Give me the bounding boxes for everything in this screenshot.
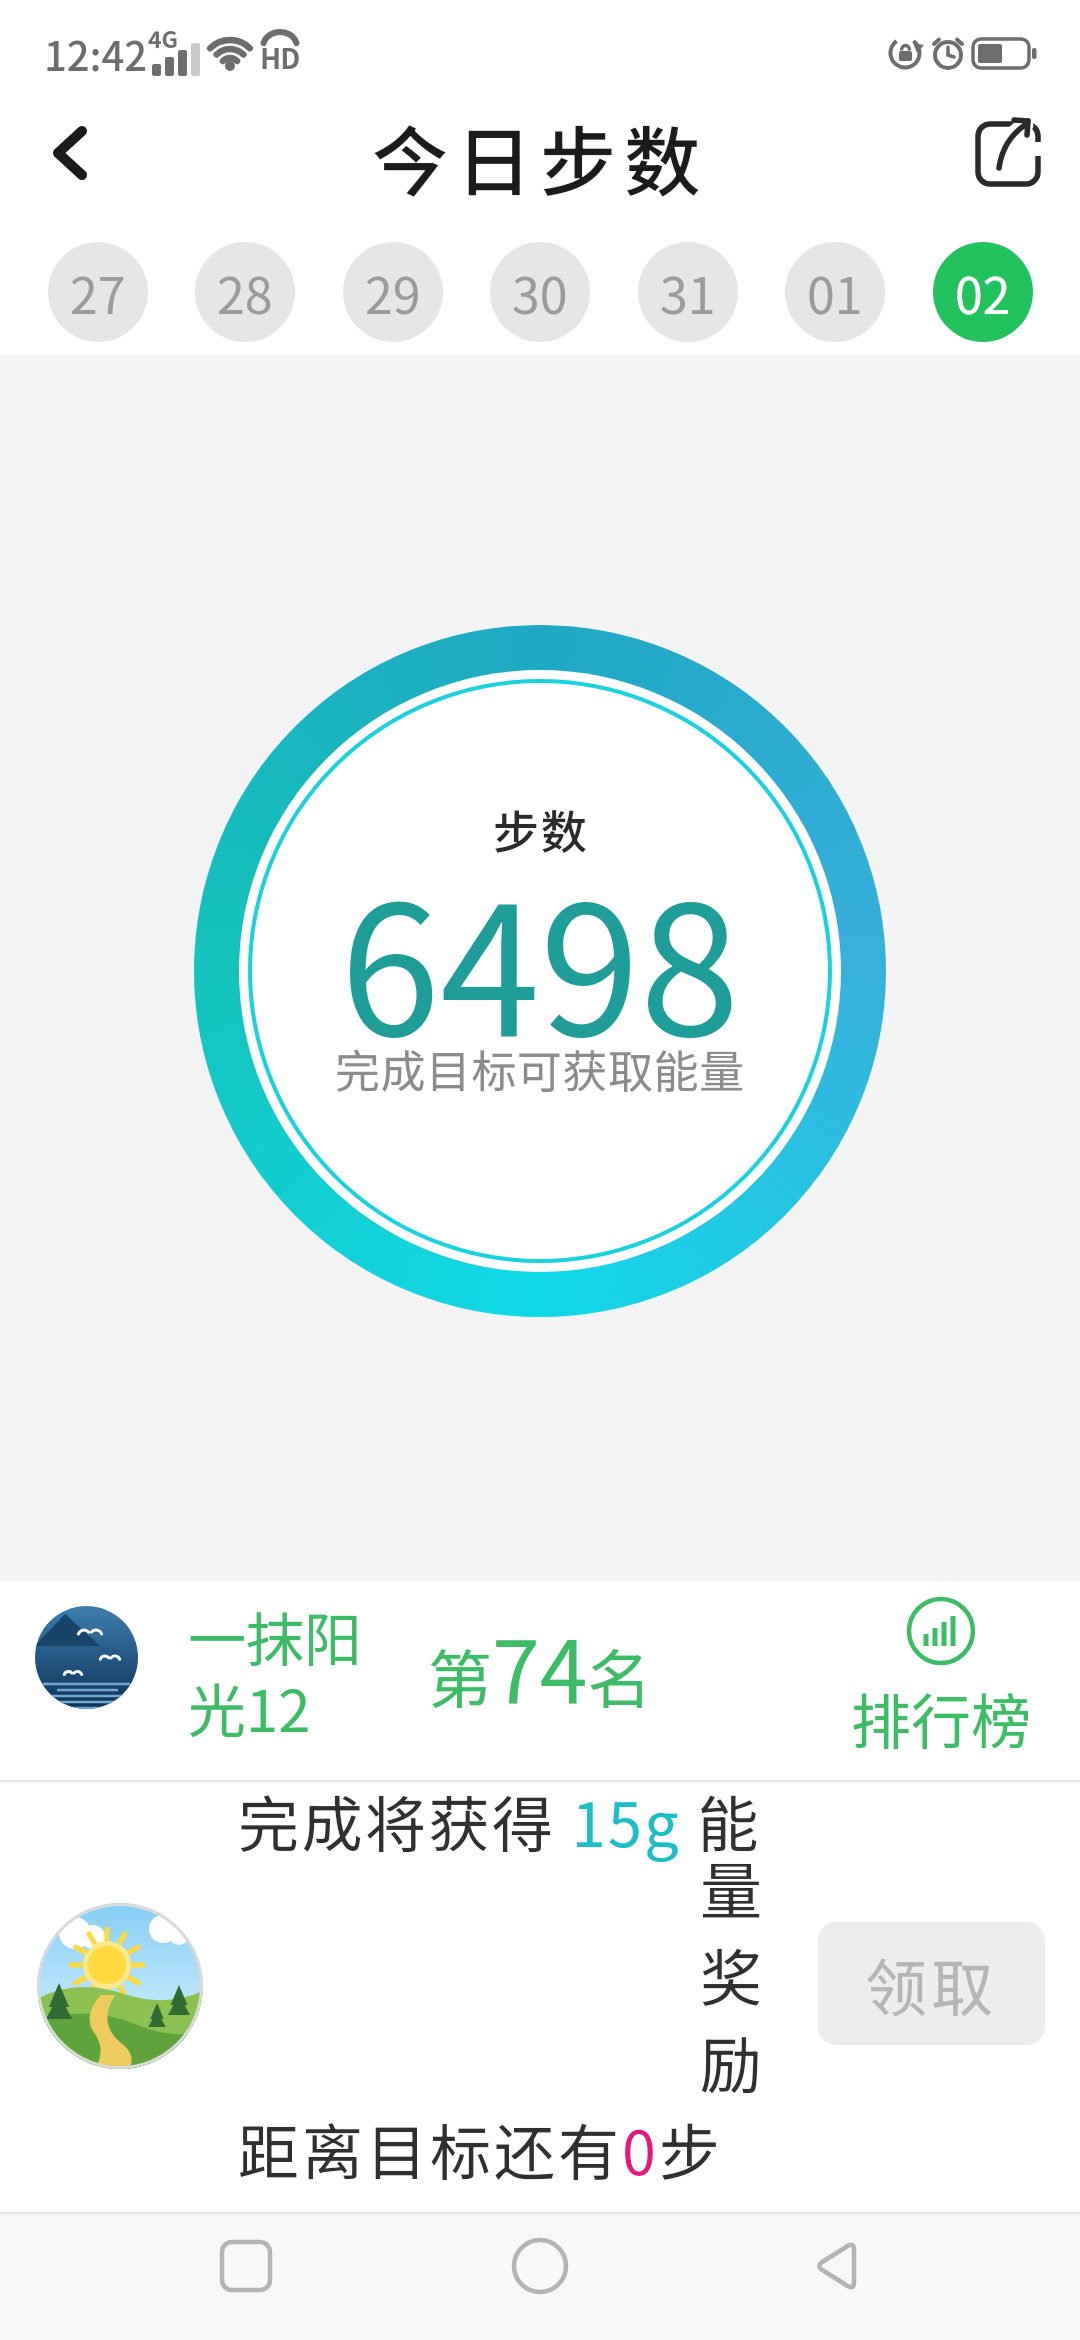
button[interactable]: 排行榜: [838, 1596, 1043, 1771]
staticText: HD: [260, 37, 300, 78]
staticText: 排行榜: [851, 1674, 1031, 1761]
staticText: 量: [700, 1842, 763, 1932]
staticText: 第74名: [428, 1603, 652, 1728]
staticText: 31: [660, 256, 716, 328]
staticText: 4G: [148, 21, 179, 54]
staticText: 励: [700, 2016, 763, 2106]
button[interactable]: 28: [195, 242, 295, 342]
staticText: 领取: [865, 1939, 998, 2029]
button[interactable]: 30: [490, 242, 590, 342]
button[interactable]: 27: [48, 242, 148, 342]
button[interactable]: [30, 110, 120, 200]
staticText: 今日步数: [372, 102, 708, 212]
staticText: 完成目标可获取能量: [335, 1036, 745, 1101]
staticText: 距离目标还有0步: [238, 2104, 723, 2192]
button[interactable]: [968, 112, 1048, 192]
button[interactable]: 31: [638, 242, 738, 342]
button[interactable]: 02: [933, 242, 1033, 342]
staticText: 29: [365, 256, 421, 328]
button[interactable]: [198, 2218, 294, 2314]
button[interactable]: 01: [785, 242, 885, 342]
staticText: 一抹阳 光12: [188, 1594, 363, 1749]
staticText: 02: [955, 256, 1011, 328]
staticText: 30: [512, 256, 568, 328]
staticText: 27: [70, 256, 126, 328]
button[interactable]: [37, 1903, 203, 2069]
staticText: 12:42: [44, 25, 148, 83]
staticText: 6498: [340, 827, 740, 1047]
button[interactable]: 领取: [818, 1922, 1045, 2045]
staticText: 步数: [492, 796, 588, 863]
button[interactable]: [35, 1606, 138, 1709]
staticText: 28: [217, 256, 273, 328]
staticText: 01: [807, 256, 863, 328]
staticText: 奖: [700, 1929, 763, 2019]
button[interactable]: [790, 2218, 886, 2314]
staticText: 完成将获得 15g 能: [238, 1776, 761, 1864]
button[interactable]: [492, 2218, 588, 2314]
button[interactable]: 29: [343, 242, 443, 342]
